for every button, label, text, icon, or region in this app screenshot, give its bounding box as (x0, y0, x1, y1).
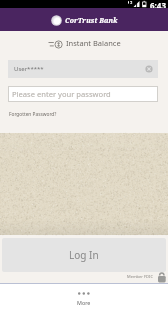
staticText: More (77, 299, 91, 306)
button[interactable]: Instant Balance (0, 36, 168, 50)
button[interactable]: User***** (8, 60, 158, 78)
button[interactable]: Please enter your password (8, 86, 158, 102)
staticText: User***** (14, 65, 44, 73)
staticText: Forgotten Password? (9, 111, 57, 118)
staticText: Instant Balance (66, 38, 121, 48)
staticText: CorTrust Bank (65, 16, 118, 25)
staticText: Please enter your password (12, 89, 111, 99)
button[interactable]: Log In (2, 238, 166, 272)
button[interactable]: Clear username (145, 65, 153, 73)
staticText: 6:43 (150, 0, 166, 8)
button[interactable]: Forgotten Password? (9, 111, 57, 118)
staticText: Log In (69, 248, 99, 262)
button[interactable]: More (0, 284, 168, 310)
other: Secure (158, 272, 166, 283)
staticText: Member FDIC (127, 274, 153, 279)
